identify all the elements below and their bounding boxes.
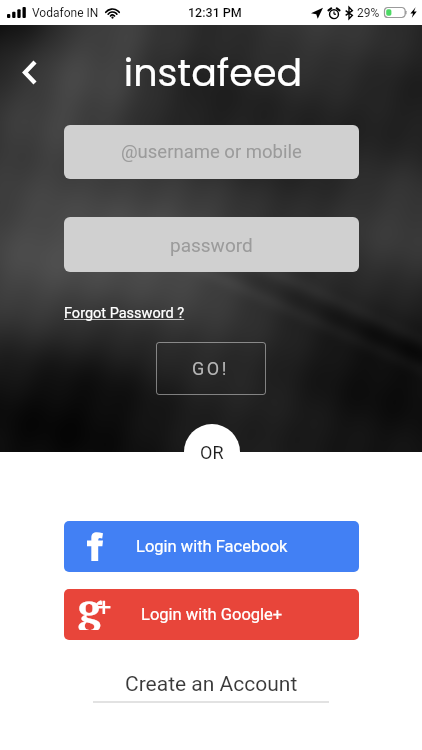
staticText: + [96,589,112,625]
staticText: Login with Google+ [141,605,283,624]
staticText: OR [200,442,224,463]
staticText: Forgot Password ? [64,305,185,322]
button[interactable]: Forgot Password ? [64,305,185,322]
staticText: Create an Account [125,672,298,697]
staticText: g [78,589,102,630]
button[interactable]: password [64,217,359,272]
staticText: password [170,234,253,256]
button[interactable]: Create an Account [93,672,329,703]
staticText: @username or mobile [121,141,302,163]
staticText: instafeed [2,46,422,99]
staticText: Vodafone IN [32,6,99,20]
staticText: Login with Facebook [136,537,288,556]
staticText: GO! [192,358,230,379]
button[interactable]: Login with Facebook [64,521,359,572]
button[interactable]: @username or mobile [64,125,359,179]
button[interactable]: Login with Google+ [64,589,359,640]
button[interactable]: GO! [156,342,266,395]
staticText: 12:31 PM [188,5,242,20]
staticText: 29% [357,6,380,20]
button[interactable]: Back [8,50,52,94]
